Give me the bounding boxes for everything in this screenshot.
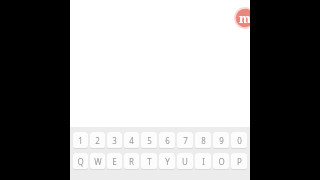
staticText: 0: [237, 135, 242, 146]
button[interactable]: 7: [177, 132, 193, 149]
button[interactable]: T: [141, 153, 157, 170]
button[interactable]: 6: [159, 132, 175, 149]
staticText: 1: [78, 135, 83, 146]
button[interactable]: E: [107, 153, 122, 170]
staticText: 4: [129, 135, 134, 146]
button[interactable]: Y: [159, 153, 175, 170]
staticText: W: [94, 156, 102, 167]
button[interactable]: [70, 0, 250, 127]
staticText: 8: [201, 135, 206, 146]
staticText: E: [112, 156, 117, 167]
button[interactable]: R: [124, 153, 139, 170]
button[interactable]: 3: [107, 132, 122, 149]
button[interactable]: Q: [73, 153, 88, 170]
staticText: m: [239, 10, 250, 26]
staticText: O: [218, 156, 225, 167]
staticText: P: [237, 156, 242, 167]
button[interactable]: 4: [124, 132, 139, 149]
staticText: 6: [165, 135, 170, 146]
button[interactable]: P: [231, 153, 247, 170]
staticText: U: [182, 156, 188, 167]
staticText: 9: [219, 135, 224, 146]
staticText: Q: [77, 156, 84, 167]
button[interactable]: 9: [213, 132, 229, 149]
staticText: 7: [183, 135, 188, 146]
button[interactable]: O: [213, 153, 229, 170]
button[interactable]: W: [90, 153, 105, 170]
staticText: 2: [95, 135, 100, 146]
staticText: Y: [165, 156, 170, 167]
staticText: T: [147, 156, 152, 167]
button[interactable]: 0: [231, 132, 247, 149]
staticText: R: [129, 156, 134, 167]
staticText: I: [202, 156, 205, 167]
staticText: 5: [147, 135, 152, 146]
staticText: 3: [112, 135, 117, 146]
button[interactable]: 1: [73, 132, 88, 149]
button[interactable]: U: [177, 153, 193, 170]
button[interactable]: I: [195, 153, 211, 170]
button[interactable]: 5: [141, 132, 157, 149]
button[interactable]: 8: [195, 132, 211, 149]
button[interactable]: 2: [90, 132, 105, 149]
other: Watermark: [234, 7, 250, 29]
